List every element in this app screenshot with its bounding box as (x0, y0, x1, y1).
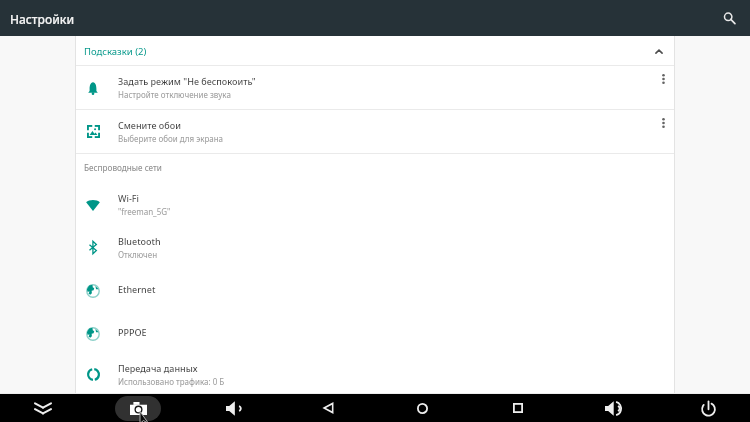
button[interactable]: Подсказки (2) (76, 36, 674, 65)
button[interactable]: Передача данных (76, 355, 674, 394)
button[interactable]: Ethernet (76, 269, 674, 312)
button[interactable]: Back (304, 394, 352, 422)
button[interactable]: Задать режим "Не беспокоить" (76, 66, 674, 109)
button[interactable]: Screenshot (114, 394, 162, 422)
button[interactable]: Power (684, 394, 732, 422)
button[interactable]: Home (398, 394, 446, 422)
button[interactable]: PPPOE (76, 312, 674, 355)
button[interactable]: More options (653, 66, 674, 109)
staticText: "freeman_5G" (118, 206, 171, 217)
staticText: Беспроводные сети (84, 162, 162, 173)
staticText: Bluetooth (118, 235, 161, 247)
staticText: Задать режим "Не беспокоить" (118, 75, 256, 87)
staticText: Wi-Fi (118, 192, 139, 204)
staticText: Настройки (10, 11, 75, 27)
button[interactable]: Recents (494, 394, 542, 422)
button[interactable]: Volume down (209, 394, 257, 422)
staticText: Подсказки (2) (84, 45, 147, 58)
staticText: Использовано трафика: 0 Б (118, 376, 225, 387)
button[interactable]: Bluetooth (76, 226, 674, 269)
button[interactable]: Volume up (589, 394, 637, 422)
staticText: Ethernet (118, 283, 156, 295)
button[interactable]: Hide navigation (19, 394, 67, 422)
staticText: Настройте отключение звука (118, 89, 231, 100)
button[interactable]: Wi-Fi (76, 183, 674, 226)
button[interactable]: More options (653, 110, 674, 153)
button[interactable]: Смените обои (76, 110, 674, 153)
staticText: Передача данных (118, 362, 198, 374)
staticText: Выберите обои для экрана (118, 133, 224, 144)
staticText: Отключен (118, 249, 158, 260)
button[interactable]: Search (717, 6, 741, 30)
staticText: Смените обои (118, 119, 181, 131)
staticText: PPPOE (118, 326, 147, 338)
